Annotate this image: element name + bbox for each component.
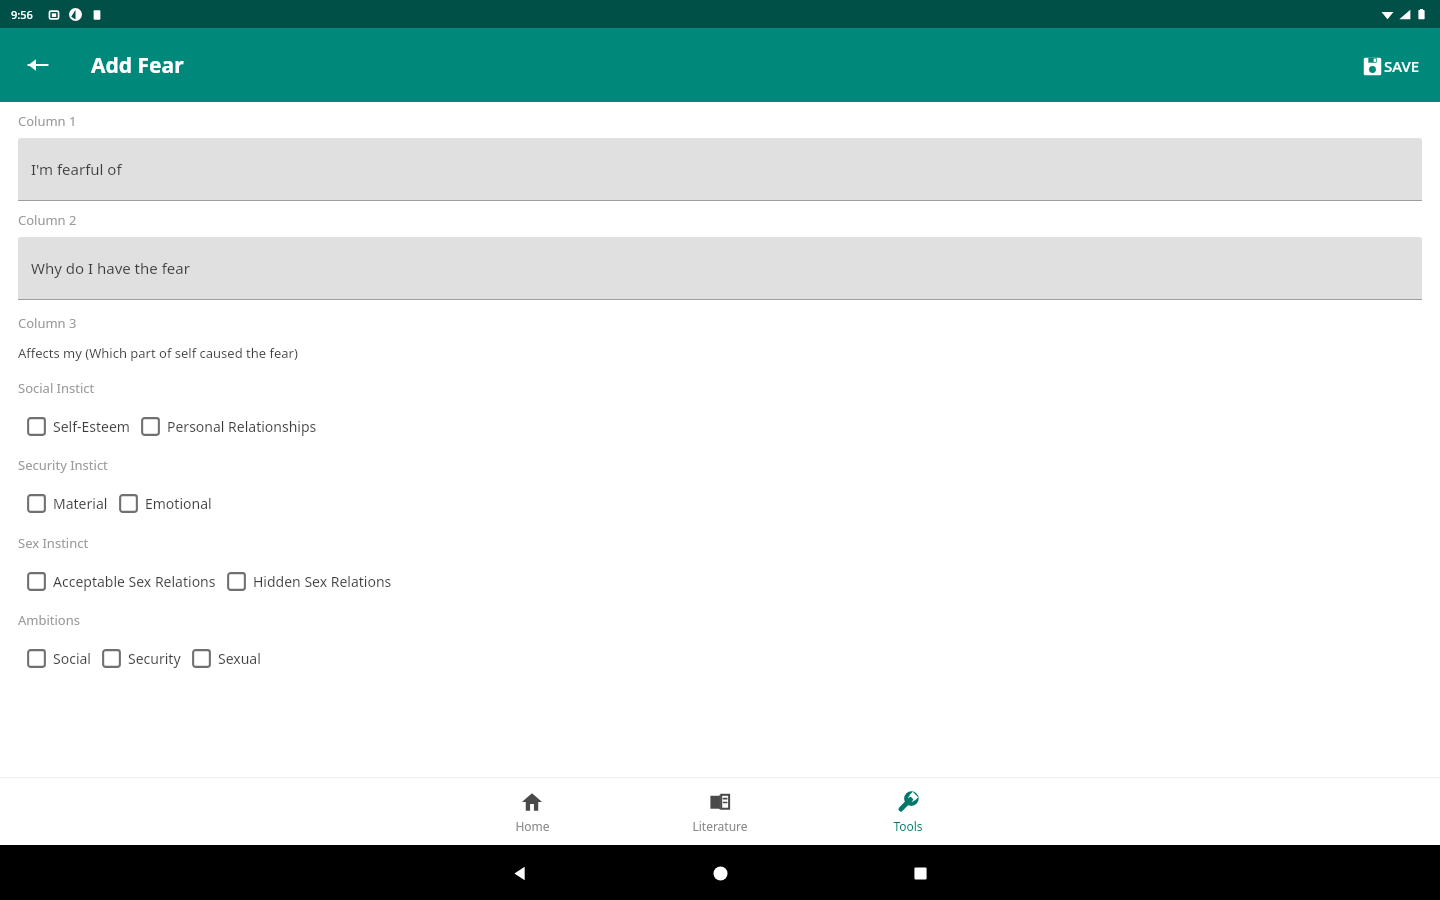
staticText: Column 3 [18, 314, 77, 332]
button[interactable]: Tools [860, 786, 956, 838]
button[interactable]: Sexual [192, 649, 261, 668]
staticText: Column 1 [18, 112, 77, 130]
staticText: Self-Esteem [53, 417, 130, 436]
staticText: Tools [893, 818, 923, 834]
button[interactable]: Back [420, 850, 620, 896]
staticText: Hidden Sex Relations [253, 572, 392, 591]
button[interactable]: Why do I have the fear [18, 237, 1422, 300]
button[interactable]: Self-Esteem [27, 417, 130, 436]
button[interactable]: Back [14, 41, 62, 89]
staticText: 9:56 [11, 7, 33, 22]
staticText: Personal Relationships [167, 417, 317, 436]
staticText: Security Instict [18, 456, 108, 474]
staticText: Literature [692, 818, 748, 834]
staticText: Security [128, 649, 181, 668]
staticText: I'm fearful of [31, 159, 122, 179]
button[interactable]: Social [27, 649, 91, 668]
button[interactable]: SAVE [1355, 48, 1428, 84]
button[interactable]: Home [620, 850, 820, 896]
button[interactable]: Recent apps [820, 850, 1020, 896]
button[interactable]: Hidden Sex Relations [227, 572, 392, 591]
button[interactable]: Home [484, 786, 580, 838]
staticText: Affects my (Which part of self caused th… [18, 344, 298, 362]
staticText: Why do I have the fear [31, 258, 190, 278]
staticText: Column 2 [18, 211, 77, 229]
staticText: Add Fear [91, 51, 184, 80]
button[interactable]: I'm fearful of [18, 138, 1422, 201]
button[interactable]: Security [102, 649, 181, 668]
staticText: Social Instict [18, 379, 95, 397]
staticText: SAVE [1384, 56, 1420, 76]
staticText: Ambitions [18, 611, 80, 629]
staticText: Social [53, 649, 91, 668]
staticText: Sex Instinct [18, 534, 89, 552]
staticText: Material [53, 494, 108, 513]
staticText: Acceptable Sex Relations [53, 572, 216, 591]
staticText: Sexual [218, 649, 261, 668]
button[interactable]: Literature [672, 786, 768, 838]
staticText: Home [515, 818, 550, 834]
button[interactable]: Material [27, 494, 108, 513]
button[interactable]: Acceptable Sex Relations [27, 572, 216, 591]
staticText: Emotional [145, 494, 212, 513]
button[interactable]: Personal Relationships [141, 417, 317, 436]
button[interactable]: Emotional [119, 494, 212, 513]
